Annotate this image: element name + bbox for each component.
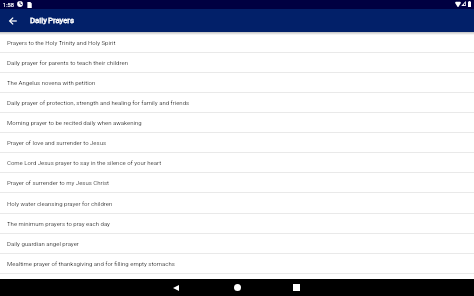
button[interactable]: The minimum prayers to pray each day bbox=[0, 214, 474, 234]
button[interactable]: Recent apps bbox=[287, 279, 306, 296]
staticText: Prayers bbox=[48, 16, 75, 25]
button[interactable]: Back bbox=[4, 12, 22, 30]
staticText: Prayer of love and surrender to Jesus bbox=[7, 139, 107, 146]
staticText: The Angelus novena with petition bbox=[7, 79, 96, 86]
staticText: Daily bbox=[30, 16, 47, 25]
staticText: Mealtime prayer of thanksgiving and for … bbox=[7, 260, 175, 267]
button[interactable]: Daily prayer for parents to teach their … bbox=[0, 53, 474, 73]
button[interactable]: Prayer of surrender to my Jesus Christ bbox=[0, 173, 474, 193]
staticText: Daily prayer of protection, strength and… bbox=[7, 99, 190, 106]
staticText: Prayers to the Holy Trinity and Holy Spi… bbox=[7, 39, 116, 46]
staticText: The minimum prayers to pray each day bbox=[7, 220, 110, 227]
staticText: Daily prayer for parents to teach their … bbox=[7, 59, 128, 66]
button[interactable]: Morning prayer to be recited daily when … bbox=[0, 113, 474, 133]
staticText: Daily guardian angel prayer bbox=[7, 240, 79, 247]
button[interactable]: Prayer of love and surrender to Jesus bbox=[0, 133, 474, 153]
button[interactable]: Prayers to the Holy Trinity and Holy Spi… bbox=[0, 33, 474, 53]
button[interactable]: Back bbox=[166, 279, 185, 296]
staticText: Morning prayer to be recited daily when … bbox=[7, 119, 142, 126]
button[interactable]: The Angelus novena with petition bbox=[0, 73, 474, 93]
button[interactable]: Holy water cleansing prayer for children bbox=[0, 194, 474, 214]
staticText: 1:58 bbox=[3, 2, 14, 9]
staticText: Holy water cleansing prayer for children bbox=[7, 200, 113, 207]
staticText: Prayer of surrender to my Jesus Christ bbox=[7, 179, 110, 186]
button[interactable]: Daily prayer of protection, strength and… bbox=[0, 93, 474, 113]
staticText: Come Lord Jesus prayer to say in the sil… bbox=[7, 159, 162, 166]
button[interactable]: Mealtime prayer of thanksgiving and for … bbox=[0, 254, 474, 274]
button[interactable]: Daily guardian angel prayer bbox=[0, 234, 474, 254]
button[interactable]: Come Lord Jesus prayer to say in the sil… bbox=[0, 153, 474, 173]
button[interactable]: Home bbox=[228, 279, 247, 296]
